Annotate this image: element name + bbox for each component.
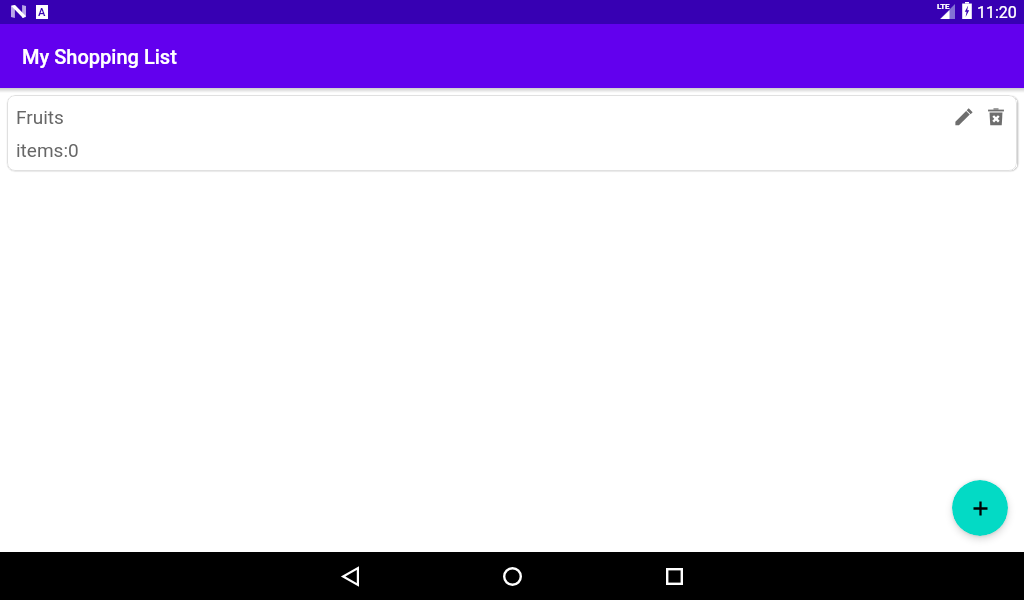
staticText: My Shopping List [22,45,177,68]
staticText: 11:20 [977,3,1017,22]
button[interactable]: Edit [955,108,973,126]
button[interactable]: Add list [952,480,1008,536]
button[interactable]: Back [326,552,374,600]
button[interactable]: Home [488,552,536,600]
staticText: LTE [937,2,950,11]
button[interactable]: Fruits [7,95,1017,171]
button[interactable]: Recents [650,552,698,600]
staticText: Fruits [16,106,64,128]
staticText: A [38,6,46,19]
button[interactable]: Delete [987,108,1005,126]
staticText: items:0 [16,139,79,161]
